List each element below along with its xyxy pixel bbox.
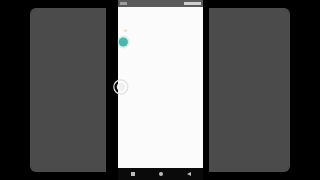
button[interactable]: Back bbox=[175, 168, 203, 180]
button[interactable]: Location marker bbox=[118, 35, 132, 49]
button[interactable]: Home bbox=[147, 168, 175, 180]
button[interactable]: Recent apps bbox=[118, 168, 147, 180]
